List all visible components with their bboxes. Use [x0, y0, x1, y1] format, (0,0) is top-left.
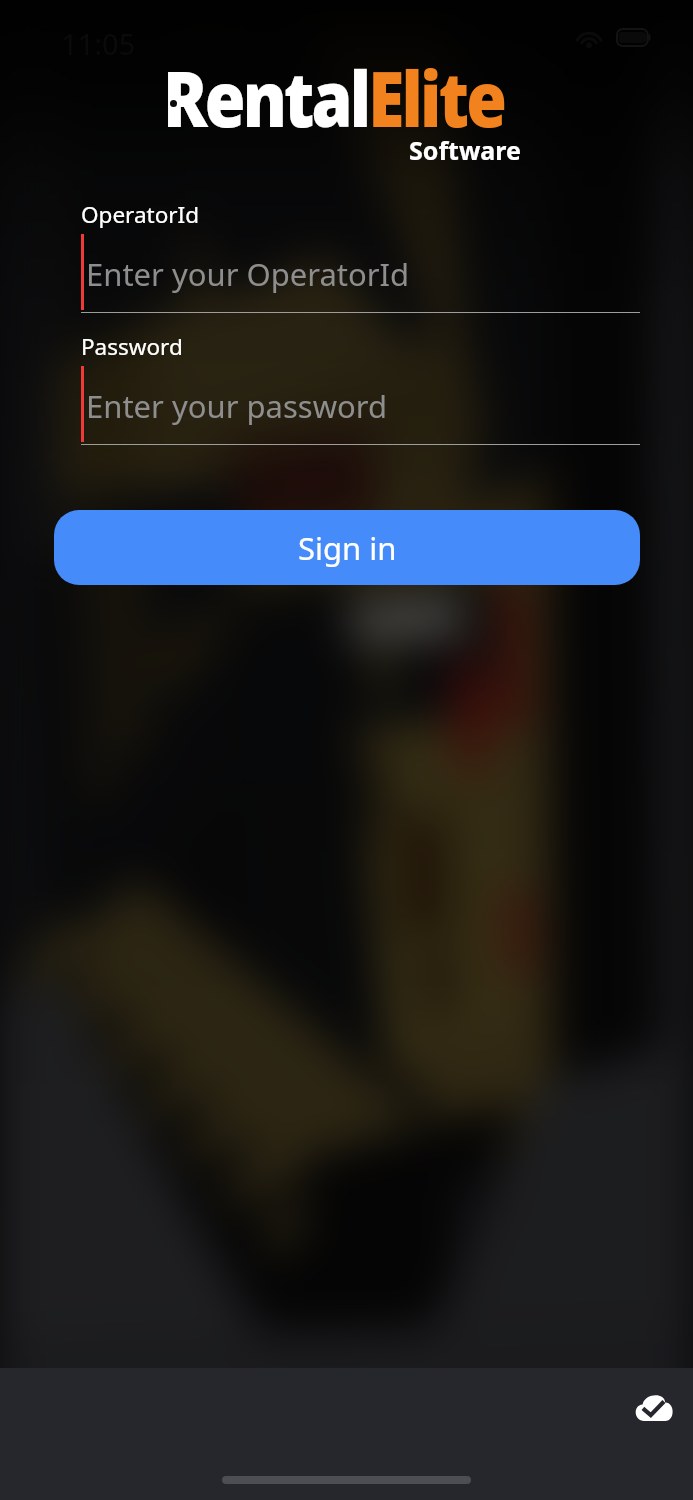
- staticText: Elite: [368, 46, 504, 150]
- staticText: Enter your OperatorId: [86, 253, 410, 295]
- button[interactable]: Sync complete: [634, 1393, 673, 1421]
- staticText: OperatorId: [81, 199, 200, 230]
- staticText: Password: [81, 331, 183, 362]
- staticText: Sign in: [298, 527, 397, 569]
- button[interactable]: Enter your password: [81, 366, 640, 445]
- staticText: Software: [409, 133, 521, 167]
- staticText: Enter your password: [86, 385, 388, 427]
- button[interactable]: Enter your OperatorId: [81, 234, 640, 313]
- button[interactable]: Sign in: [54, 510, 640, 585]
- staticText: Rental: [163, 46, 368, 150]
